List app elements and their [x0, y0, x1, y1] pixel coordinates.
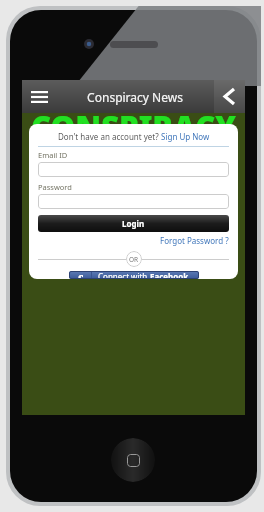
button[interactable]: Sign Up Now: [161, 131, 210, 142]
staticText: Connect with: [98, 271, 150, 279]
staticText: Don't have an account yet?: [58, 131, 161, 142]
button[interactable]: Back: [214, 80, 245, 113]
button[interactable]: f: [69, 271, 199, 279]
staticText: Sign Up Now: [161, 131, 210, 142]
staticText: Email ID: [38, 150, 68, 160]
staticText: Conspiracy News: [56, 89, 214, 105]
staticText: OR: [129, 255, 139, 264]
staticText: Facebook: [150, 271, 189, 279]
button[interactable]: [38, 194, 229, 209]
button[interactable]: [38, 162, 229, 177]
staticText: Password: [38, 182, 72, 192]
button[interactable]: Menu: [22, 80, 56, 113]
button[interactable]: Login: [38, 215, 229, 232]
staticText: Login: [122, 218, 145, 229]
button[interactable]: Forgot Password ?: [160, 235, 229, 246]
button[interactable]: Home: [111, 438, 155, 482]
staticText: CONSPIRACY: [22, 106, 245, 148]
staticText: f: [77, 271, 83, 279]
staticText: Forgot Password ?: [160, 235, 229, 246]
